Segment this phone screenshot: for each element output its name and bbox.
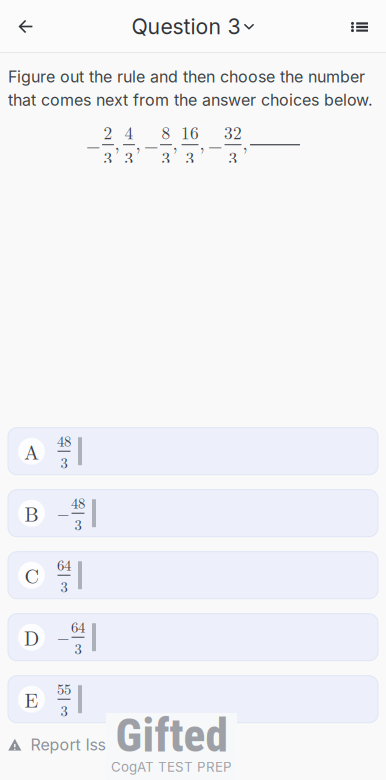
staticText: A bbox=[24, 437, 39, 465]
staticText: B bbox=[24, 499, 38, 527]
staticText: 3 bbox=[74, 638, 81, 658]
staticText: 3 bbox=[60, 452, 67, 472]
staticText: , bbox=[242, 129, 247, 155]
button[interactable]: Question list bbox=[337, 3, 383, 49]
staticText: 3 bbox=[60, 700, 67, 720]
staticText: 3 bbox=[60, 576, 67, 596]
button[interactable]: E bbox=[8, 676, 378, 723]
staticText: − bbox=[208, 131, 223, 158]
staticText: , bbox=[199, 129, 204, 155]
button[interactable]: D bbox=[8, 614, 378, 661]
staticText: 16 bbox=[181, 120, 199, 144]
staticText: D bbox=[24, 623, 39, 651]
staticText: 3 bbox=[185, 145, 194, 170]
staticText: that comes next from the answer choices … bbox=[8, 90, 373, 110]
staticText: 48 bbox=[71, 492, 85, 513]
button[interactable]: Report Issue bbox=[8, 734, 378, 756]
staticText: Question 3 bbox=[132, 14, 241, 39]
staticText: 2 bbox=[103, 120, 112, 144]
staticText: − bbox=[86, 131, 101, 158]
staticText: E bbox=[24, 685, 38, 713]
staticText: Figure out the rule and then choose the … bbox=[8, 67, 365, 86]
staticText: − bbox=[57, 502, 69, 525]
staticText: 64 bbox=[71, 616, 85, 637]
staticText: , bbox=[135, 129, 140, 155]
staticText: 32 bbox=[224, 120, 242, 144]
button[interactable]: Back bbox=[3, 3, 49, 49]
button[interactable]: C bbox=[8, 552, 378, 599]
staticText: C bbox=[24, 561, 38, 589]
staticText: 3 bbox=[124, 145, 133, 170]
staticText: 55 bbox=[57, 678, 71, 699]
staticText: 4 bbox=[124, 120, 133, 144]
staticText: Report Issue bbox=[31, 735, 124, 754]
staticText: 8 bbox=[161, 120, 170, 144]
staticText: 3 bbox=[103, 145, 112, 170]
button[interactable]: Question 3 bbox=[124, 3, 262, 49]
staticText: 3 bbox=[74, 514, 81, 534]
staticText: , bbox=[114, 129, 119, 155]
staticText: − bbox=[144, 131, 159, 158]
staticText: 3 bbox=[228, 145, 237, 170]
staticText: , bbox=[172, 129, 177, 155]
staticText: CogAT TEST PREP bbox=[111, 759, 232, 775]
staticText: Gifted bbox=[115, 709, 227, 762]
staticText: 48 bbox=[57, 430, 71, 451]
staticText: 3 bbox=[161, 145, 170, 170]
staticText: − bbox=[57, 626, 69, 649]
button[interactable]: B bbox=[8, 490, 378, 537]
button[interactable]: A bbox=[8, 428, 378, 475]
staticText: 64 bbox=[57, 554, 71, 575]
